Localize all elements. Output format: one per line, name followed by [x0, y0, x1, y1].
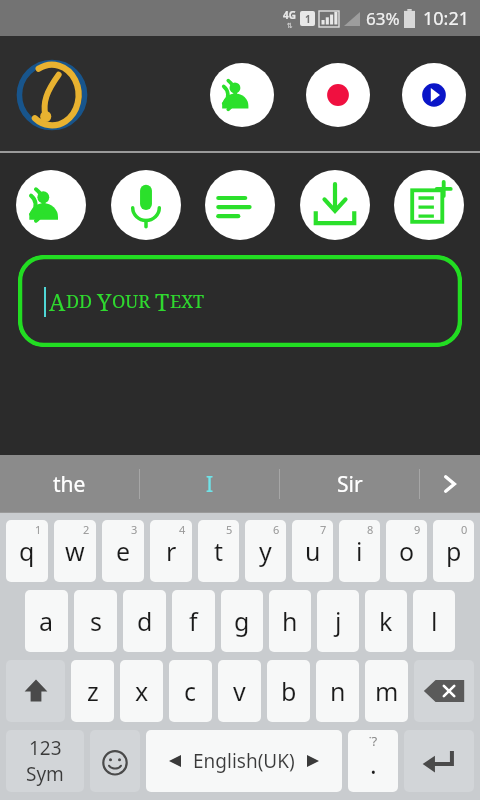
- staticText: b: [281, 674, 297, 708]
- button[interactable]: c: [169, 660, 212, 722]
- staticText: n: [330, 674, 346, 708]
- button[interactable]: Period: [348, 730, 398, 792]
- staticText: i: [356, 534, 363, 568]
- staticText: 9: [414, 522, 421, 537]
- staticText: v: [233, 674, 246, 708]
- staticText: s: [90, 604, 102, 638]
- button[interactable]: Text lines: [205, 170, 275, 240]
- staticText: Sym: [26, 761, 64, 787]
- staticText: 6: [273, 522, 280, 537]
- button[interactable]: q: [6, 520, 48, 582]
- button[interactable]: 123: [6, 730, 84, 792]
- button[interactable]: More suggestions: [420, 455, 480, 513]
- button[interactable]: Microphone: [111, 170, 181, 240]
- button[interactable]: x: [120, 660, 163, 722]
- button[interactable]: z: [71, 660, 114, 722]
- staticText: q: [19, 534, 35, 568]
- button[interactable]: e: [102, 520, 144, 582]
- staticText: 10:21: [423, 6, 470, 31]
- button[interactable]: m: [365, 660, 408, 722]
- staticText: 123: [29, 735, 62, 761]
- button[interactable]: Backspace: [414, 660, 474, 722]
- staticText: u: [305, 534, 321, 568]
- staticText: 4: [179, 522, 186, 537]
- button[interactable]: New note: [394, 170, 464, 240]
- staticText: h: [282, 604, 298, 638]
- staticText: d: [137, 604, 153, 638]
- staticText: A: [49, 286, 66, 317]
- button[interactable]: d: [123, 590, 166, 652]
- staticText: p: [446, 534, 462, 568]
- staticText: o: [399, 534, 415, 568]
- staticText: y: [259, 534, 272, 568]
- staticText: the: [53, 470, 86, 499]
- button[interactable]: v: [218, 660, 261, 722]
- staticText: 1: [305, 12, 311, 26]
- staticText: f: [189, 604, 198, 638]
- button[interactable]: Play: [402, 63, 466, 127]
- button[interactable]: Sir: [280, 455, 419, 513]
- staticText: w: [65, 534, 85, 568]
- button[interactable]: Space, English UK: [146, 730, 342, 792]
- button[interactable]: f: [172, 590, 215, 652]
- staticText: m: [375, 674, 399, 708]
- staticText: t: [214, 534, 224, 568]
- staticText: ⇅: [287, 22, 293, 30]
- button[interactable]: Emoji: [90, 730, 140, 792]
- button[interactable]: g: [221, 590, 263, 652]
- button[interactable]: u: [292, 520, 333, 582]
- staticText: ˙?: [369, 732, 378, 750]
- staticText: j: [335, 604, 342, 638]
- button[interactable]: y: [245, 520, 286, 582]
- button[interactable]: A: [18, 255, 462, 347]
- staticText: T: [155, 286, 170, 317]
- staticText: l: [431, 604, 438, 638]
- button[interactable]: i: [339, 520, 380, 582]
- staticText: English(UK): [193, 748, 295, 774]
- staticText: g: [234, 604, 250, 638]
- button[interactable]: h: [269, 590, 311, 652]
- button[interactable]: App logo: [10, 53, 94, 137]
- staticText: 4G: [283, 8, 296, 22]
- staticText: c: [184, 674, 197, 708]
- button[interactable]: I: [140, 455, 279, 513]
- staticText: DD: [66, 289, 97, 314]
- staticText: Sir: [337, 470, 363, 499]
- staticText: 0: [461, 522, 468, 537]
- button[interactable]: Speak: [16, 170, 86, 240]
- staticText: I: [206, 470, 214, 499]
- staticText: r: [166, 534, 177, 568]
- button[interactable]: r: [150, 520, 192, 582]
- staticText: 5: [226, 522, 233, 537]
- button[interactable]: l: [413, 590, 455, 652]
- staticText: x: [135, 674, 149, 708]
- button[interactable]: w: [54, 520, 96, 582]
- staticText: 1: [35, 522, 42, 537]
- button[interactable]: n: [316, 660, 359, 722]
- button[interactable]: Shift: [6, 660, 65, 722]
- button[interactable]: j: [317, 590, 359, 652]
- staticText: a: [39, 604, 54, 638]
- button[interactable]: k: [365, 590, 407, 652]
- staticText: 63%: [366, 7, 400, 30]
- button[interactable]: a: [25, 590, 68, 652]
- button[interactable]: s: [74, 590, 117, 652]
- button[interactable]: o: [386, 520, 427, 582]
- button[interactable]: b: [267, 660, 310, 722]
- button[interactable]: the: [0, 455, 139, 513]
- staticText: .: [370, 747, 377, 781]
- staticText: OUR: [112, 289, 155, 314]
- staticText: EXT: [170, 289, 205, 314]
- button[interactable]: Record: [306, 63, 370, 127]
- button[interactable]: Download: [300, 170, 370, 240]
- staticText: 3: [131, 522, 138, 537]
- staticText: e: [116, 534, 131, 568]
- staticText: 7: [320, 522, 327, 537]
- button[interactable]: t: [198, 520, 239, 582]
- button[interactable]: Enter: [404, 730, 474, 792]
- staticText: 8: [367, 522, 374, 537]
- button[interactable]: Speak: [210, 63, 274, 127]
- staticText: Y: [97, 286, 112, 317]
- staticText: z: [87, 674, 99, 708]
- button[interactable]: p: [433, 520, 474, 582]
